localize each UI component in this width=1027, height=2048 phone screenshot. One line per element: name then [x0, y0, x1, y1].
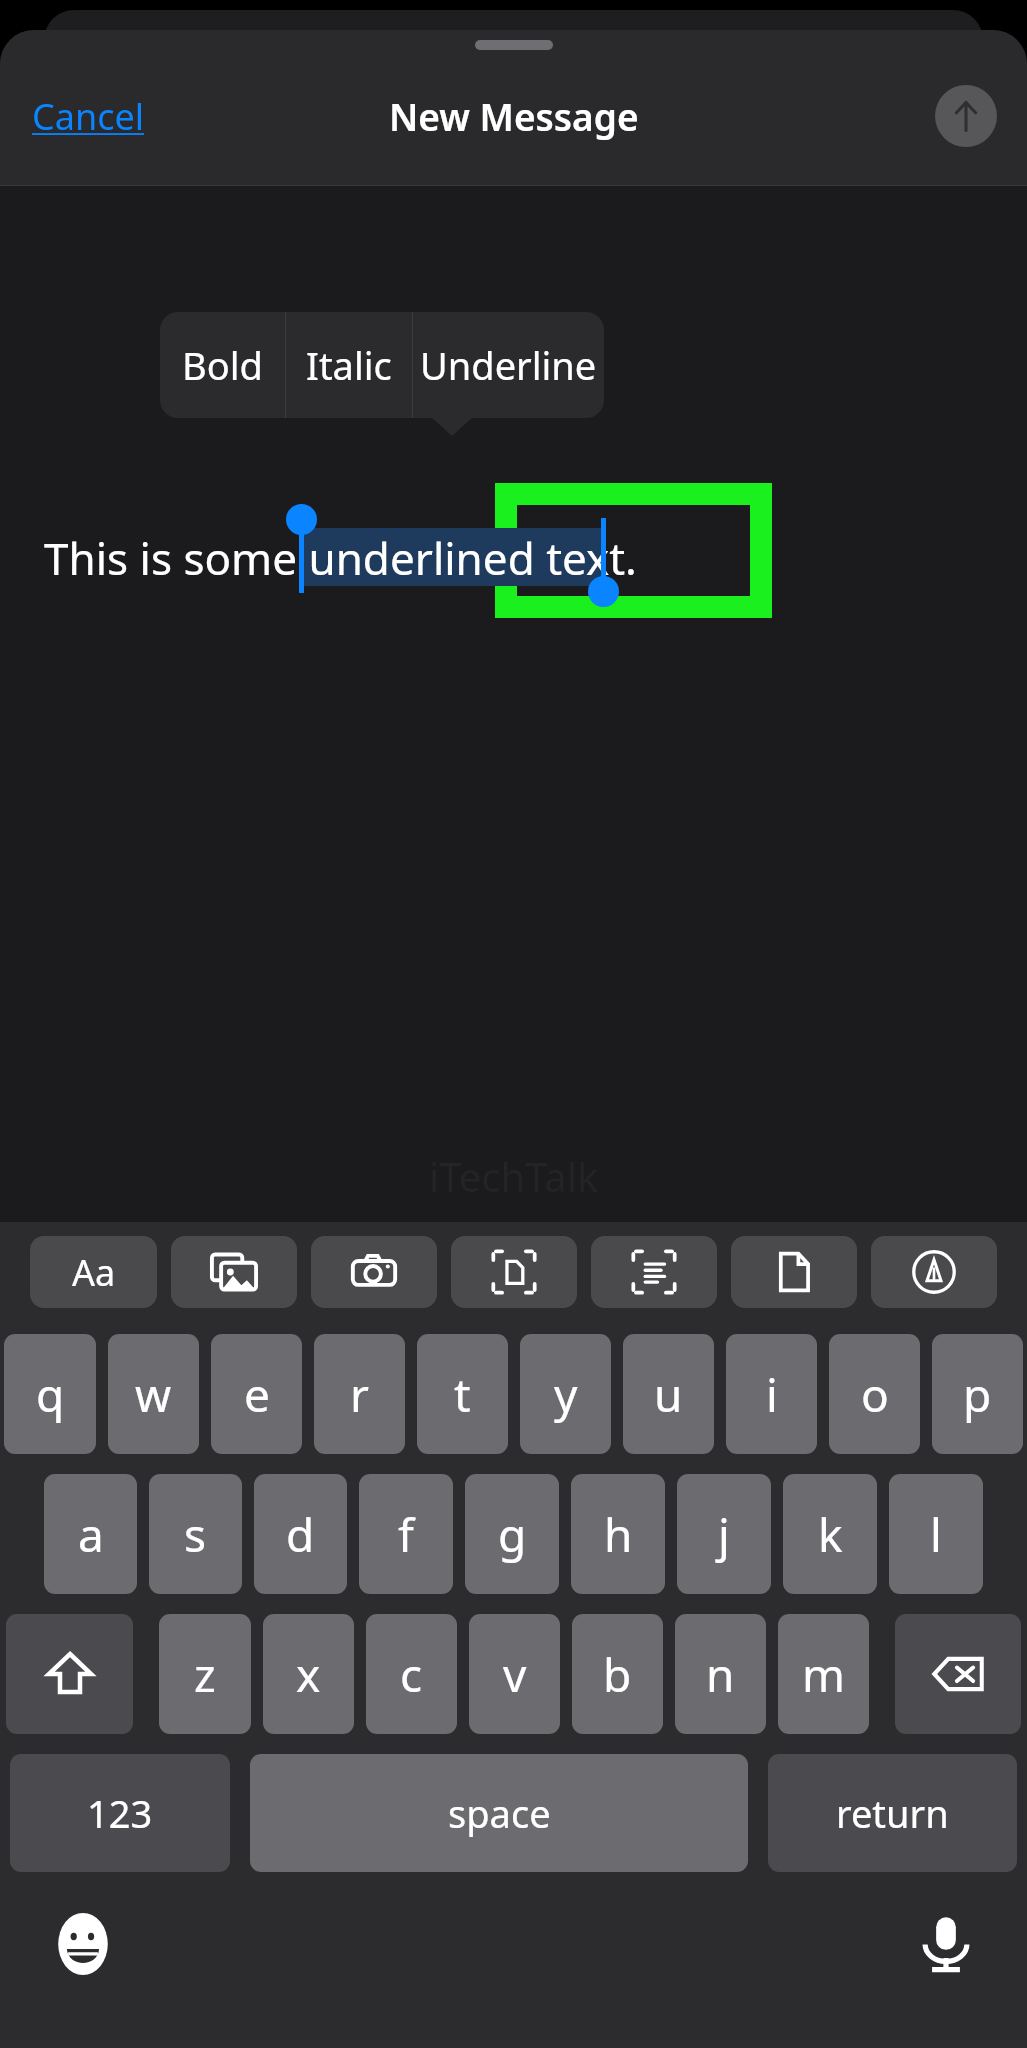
- staticText: 123: [87, 1787, 153, 1839]
- staticText: v: [503, 1643, 527, 1706]
- button[interactable]: p: [932, 1334, 1023, 1454]
- button[interactable]: i: [726, 1334, 817, 1454]
- button[interactable]: u: [623, 1334, 714, 1454]
- staticText: a: [78, 1503, 104, 1566]
- button[interactable]: h: [571, 1474, 665, 1594]
- staticText: Bold: [182, 339, 263, 391]
- staticText: w: [135, 1363, 172, 1426]
- staticText: return: [836, 1787, 949, 1839]
- button[interactable]: Backspace: [895, 1614, 1021, 1734]
- button[interactable]: Selection start handle: [286, 504, 317, 535]
- button[interactable]: return: [768, 1754, 1017, 1872]
- button[interactable]: s: [149, 1474, 242, 1594]
- staticText: o: [861, 1363, 889, 1426]
- staticText: space: [448, 1787, 551, 1839]
- button[interactable]: y: [520, 1334, 611, 1454]
- button[interactable]: m: [778, 1614, 869, 1734]
- button[interactable]: Text format: [30, 1236, 157, 1308]
- button[interactable]: Scan text: [591, 1236, 717, 1308]
- button[interactable]: Cancel: [20, 84, 157, 149]
- staticText: h: [604, 1503, 633, 1566]
- staticText: r: [350, 1363, 369, 1426]
- button[interactable]: Shift: [6, 1614, 133, 1734]
- button[interactable]: d: [254, 1474, 347, 1594]
- staticText: c: [400, 1643, 423, 1706]
- button[interactable]: Selection end handle: [588, 576, 619, 607]
- button[interactable]: t: [417, 1334, 508, 1454]
- button[interactable]: Camera: [311, 1236, 437, 1308]
- button[interactable]: Bold: [160, 312, 285, 418]
- button[interactable]: Photos: [171, 1236, 297, 1308]
- button[interactable]: b: [572, 1614, 663, 1734]
- staticText: s: [184, 1503, 207, 1566]
- button[interactable]: g: [465, 1474, 559, 1594]
- button[interactable]: e: [211, 1334, 302, 1454]
- button[interactable]: 123: [10, 1754, 230, 1872]
- button[interactable]: k: [783, 1474, 877, 1594]
- button[interactable]: r: [314, 1334, 405, 1454]
- button[interactable]: Emoji: [50, 1911, 116, 1977]
- button[interactable]: w: [108, 1334, 199, 1454]
- staticText: m: [802, 1643, 846, 1706]
- staticText: x: [296, 1643, 321, 1706]
- button[interactable]: f: [359, 1474, 453, 1594]
- staticText: q: [36, 1363, 65, 1426]
- staticText: Italic: [306, 339, 392, 391]
- staticText: k: [818, 1503, 843, 1566]
- button[interactable]: l: [889, 1474, 983, 1594]
- staticText: Aa: [72, 1248, 116, 1297]
- button[interactable]: c: [366, 1614, 457, 1734]
- button[interactable]: n: [675, 1614, 766, 1734]
- staticText: u: [654, 1363, 683, 1426]
- button[interactable]: x: [263, 1614, 354, 1734]
- staticText: New Message: [389, 91, 639, 141]
- button[interactable]: Markup: [871, 1236, 997, 1308]
- staticText: p: [963, 1363, 992, 1426]
- staticText: z: [194, 1643, 216, 1706]
- staticText: f: [398, 1503, 414, 1566]
- staticText: i: [766, 1363, 778, 1426]
- button[interactable]: space: [250, 1754, 748, 1872]
- staticText: g: [498, 1503, 527, 1566]
- button[interactable]: Italic: [286, 312, 412, 418]
- button[interactable]: j: [677, 1474, 771, 1594]
- staticText: This is some underlined text.: [44, 528, 637, 588]
- staticText: n: [706, 1643, 735, 1706]
- button[interactable]: v: [469, 1614, 560, 1734]
- staticText: l: [930, 1503, 942, 1566]
- button[interactable]: o: [829, 1334, 920, 1454]
- staticText: Underline: [420, 339, 597, 391]
- button[interactable]: Dictation: [913, 1911, 979, 1977]
- staticText: y: [554, 1363, 578, 1426]
- staticText: d: [286, 1503, 315, 1566]
- button[interactable]: q: [4, 1334, 96, 1454]
- staticText: t: [454, 1363, 471, 1426]
- button[interactable]: Send: [935, 85, 997, 147]
- staticText: j: [718, 1503, 730, 1566]
- staticText: Cancel: [32, 92, 145, 141]
- button[interactable]: z: [159, 1614, 251, 1734]
- button[interactable]: Underline: [413, 312, 604, 418]
- staticText: b: [603, 1643, 632, 1706]
- staticText: e: [244, 1363, 270, 1426]
- button[interactable]: Document: [731, 1236, 857, 1308]
- button[interactable]: Scan document: [451, 1236, 577, 1308]
- button[interactable]: a: [44, 1474, 137, 1594]
